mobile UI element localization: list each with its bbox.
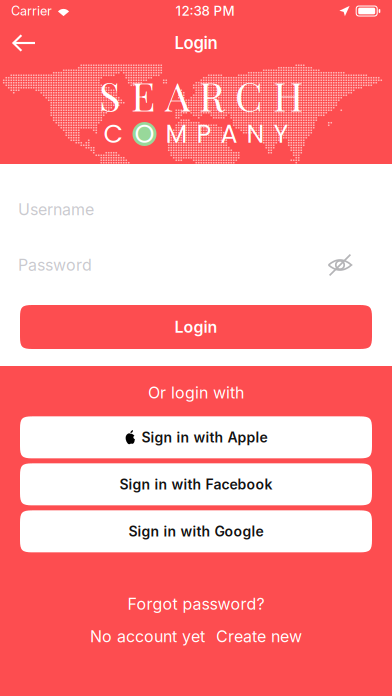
button[interactable]: Sign in with Google — [20, 510, 372, 552]
staticText: Username — [18, 200, 94, 219]
staticText: Y — [273, 116, 288, 152]
staticText: Create new — [216, 627, 302, 646]
staticText: O — [134, 116, 154, 152]
staticText: Or login with — [148, 383, 244, 402]
staticText: Carrier — [11, 3, 52, 19]
staticText: Forgot password? — [127, 594, 264, 614]
button[interactable]: Back — [0, 22, 48, 64]
staticText: N — [246, 116, 264, 152]
staticText: C — [103, 116, 123, 152]
staticText: Sign in with Facebook — [119, 476, 272, 493]
staticText: Sign in with Google — [128, 523, 263, 540]
button[interactable]: Show password — [327, 252, 353, 278]
staticText: A — [220, 116, 237, 152]
staticText: Sign in with Apple — [141, 429, 267, 446]
staticText: Login — [174, 317, 217, 337]
staticText: No account yet — [90, 627, 205, 646]
staticText: SEARCH — [99, 68, 303, 122]
button[interactable]: Sign in with Facebook — [20, 463, 372, 505]
staticText: P — [196, 116, 211, 152]
button[interactable]: Forgot password? — [127, 589, 264, 619]
button[interactable]: Create new — [216, 627, 302, 646]
button[interactable]: Sign in with Apple — [20, 416, 372, 458]
staticText: Password — [18, 255, 92, 275]
staticText: M — [165, 116, 187, 152]
staticText: Login — [174, 33, 217, 53]
button[interactable]: Login — [20, 305, 372, 349]
staticText: 12:38 PM — [175, 3, 234, 19]
